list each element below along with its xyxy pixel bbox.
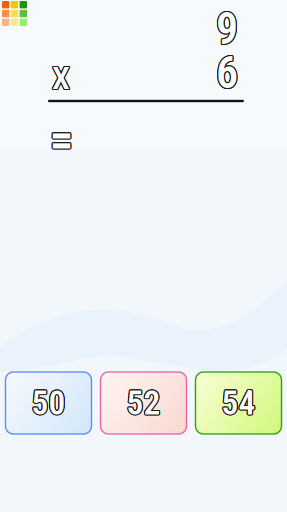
staticText: X bbox=[53, 59, 71, 96]
staticText: = bbox=[49, 111, 73, 167]
button[interactable]: App logo bbox=[2, 1, 27, 26]
staticText: 50 bbox=[31, 383, 65, 422]
staticText: = bbox=[50, 113, 74, 169]
staticText: 6 bbox=[216, 47, 238, 99]
staticText: 54 bbox=[221, 383, 255, 423]
staticText: 54 bbox=[222, 384, 256, 423]
staticText: 52 bbox=[126, 383, 160, 423]
staticText: X bbox=[53, 59, 71, 97]
staticText: 50 bbox=[31, 384, 65, 424]
button[interactable]: 54 bbox=[195, 372, 281, 434]
staticText: 52 bbox=[127, 383, 161, 422]
staticText: 52 bbox=[127, 383, 161, 422]
staticText: 54 bbox=[222, 383, 256, 422]
staticText: 52 bbox=[126, 384, 160, 423]
staticText: 6 bbox=[216, 48, 238, 100]
staticText: 6 bbox=[215, 47, 237, 99]
staticText: 50 bbox=[31, 382, 65, 422]
staticText: = bbox=[50, 112, 74, 168]
staticText: 54 bbox=[221, 382, 255, 422]
staticText: = bbox=[49, 113, 73, 169]
staticText: 6 bbox=[216, 46, 238, 98]
staticText: = bbox=[49, 112, 73, 168]
staticText: 6 bbox=[216, 46, 238, 98]
staticText: = bbox=[50, 112, 74, 168]
staticText: 54 bbox=[221, 384, 255, 424]
staticText: 9 bbox=[216, 2, 238, 54]
staticText: X bbox=[53, 58, 71, 96]
staticText: 54 bbox=[221, 384, 255, 423]
staticText: 50 bbox=[31, 383, 65, 422]
staticText: 6 bbox=[216, 48, 238, 100]
staticText: 6 bbox=[217, 47, 239, 98]
staticText: X bbox=[52, 60, 70, 98]
staticText: 52 bbox=[127, 382, 161, 422]
staticText: 50 bbox=[31, 383, 65, 423]
staticText: 50 bbox=[31, 382, 65, 422]
staticText: 6 bbox=[215, 48, 237, 99]
staticText: X bbox=[51, 60, 69, 97]
staticText: 9 bbox=[217, 2, 239, 54]
staticText: 9 bbox=[215, 4, 237, 55]
staticText: 9 bbox=[215, 3, 237, 54]
staticText: 50 bbox=[31, 384, 65, 423]
staticText: X bbox=[52, 58, 70, 96]
staticText: 54 bbox=[220, 383, 254, 423]
staticText: = bbox=[49, 112, 73, 168]
staticText: 54 bbox=[222, 384, 256, 423]
staticText: = bbox=[50, 111, 74, 167]
staticText: X bbox=[53, 60, 71, 97]
staticText: 52 bbox=[125, 383, 159, 423]
staticText: 6 bbox=[215, 46, 237, 98]
staticText: X bbox=[52, 60, 70, 98]
staticText: = bbox=[50, 113, 74, 169]
staticText: 9 bbox=[216, 4, 238, 56]
staticText: 52 bbox=[126, 382, 160, 422]
staticText: = bbox=[50, 111, 74, 168]
staticText: 50 bbox=[32, 382, 66, 422]
staticText: 52 bbox=[126, 384, 160, 423]
staticText: 52 bbox=[126, 384, 160, 424]
staticText: 54 bbox=[222, 384, 256, 423]
staticText: 52 bbox=[126, 384, 160, 423]
staticText: X bbox=[51, 59, 69, 96]
staticText: 9 bbox=[216, 2, 238, 54]
staticText: 6 bbox=[215, 47, 237, 98]
staticText: = bbox=[49, 111, 73, 167]
button[interactable]: 52 bbox=[100, 372, 186, 434]
staticText: 9 bbox=[217, 3, 239, 55]
button[interactable]: 50 bbox=[5, 372, 91, 434]
staticText: 50 bbox=[31, 384, 65, 423]
staticText: 54 bbox=[221, 382, 255, 422]
staticText: 9 bbox=[215, 3, 237, 55]
staticText: = bbox=[49, 113, 73, 169]
staticText: 50 bbox=[32, 383, 66, 422]
staticText: 50 bbox=[32, 383, 66, 423]
staticText: 9 bbox=[215, 4, 237, 55]
staticText: 6 bbox=[217, 46, 239, 98]
staticText: 9 bbox=[217, 3, 239, 54]
staticText: 50 bbox=[31, 384, 65, 423]
staticText: 52 bbox=[126, 383, 160, 422]
staticText: 52 bbox=[127, 383, 161, 423]
staticText: 9 bbox=[216, 4, 238, 56]
staticText: 54 bbox=[222, 383, 256, 422]
staticText: 6 bbox=[215, 48, 237, 99]
staticText: 50 bbox=[32, 384, 66, 423]
staticText: 52 bbox=[127, 384, 161, 423]
staticText: 54 bbox=[221, 383, 255, 422]
staticText: 50 bbox=[32, 384, 66, 423]
staticText: X bbox=[52, 58, 70, 96]
staticText: = bbox=[49, 111, 73, 168]
staticText: X bbox=[51, 58, 69, 96]
staticText: 6 bbox=[217, 48, 239, 99]
staticText: X bbox=[51, 60, 69, 97]
staticText: 6 bbox=[217, 47, 239, 99]
staticText: 52 bbox=[126, 383, 160, 422]
staticText: = bbox=[49, 113, 73, 169]
staticText: = bbox=[50, 111, 74, 167]
staticText: 6 bbox=[216, 48, 238, 100]
staticText: 54 bbox=[222, 382, 256, 422]
staticText: 52 bbox=[127, 384, 161, 423]
staticText: 54 bbox=[222, 383, 256, 423]
